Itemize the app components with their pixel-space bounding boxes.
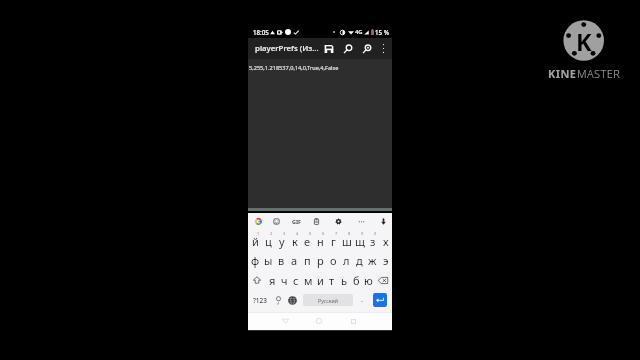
button[interactable]: Recent apps <box>336 312 370 330</box>
staticText: Русский <box>318 297 338 304</box>
staticText: 9 <box>361 231 364 236</box>
button[interactable]: ф <box>248 250 262 270</box>
staticText: ?123 <box>253 296 267 305</box>
staticText: и <box>317 273 324 288</box>
staticText: х <box>383 234 389 249</box>
button[interactable]: Backspace <box>374 270 392 290</box>
staticText: KINE <box>548 66 577 81</box>
staticText: б <box>353 273 360 288</box>
button[interactable]: т <box>326 270 338 290</box>
button[interactable]: ь <box>338 270 350 290</box>
button[interactable]: GIF <box>286 213 306 230</box>
button[interactable]: 3 <box>275 230 288 250</box>
button[interactable]: ч <box>278 270 290 290</box>
staticText: playerPrefs (Из… <box>255 43 319 54</box>
button[interactable]: м <box>302 270 314 290</box>
button[interactable]: Shift <box>248 270 266 290</box>
button[interactable]: Clipboard <box>306 213 327 230</box>
button[interactable]: ю <box>362 270 374 290</box>
staticText: к <box>292 234 298 249</box>
button[interactable]: 5 <box>301 230 314 250</box>
button[interactable]: 1 <box>248 230 262 250</box>
button[interactable]: а <box>288 250 301 270</box>
button[interactable]: Stickers <box>267 213 286 230</box>
button[interactable]: 6 <box>314 230 327 250</box>
button[interactable]: л <box>340 250 353 270</box>
staticText: 1 <box>257 231 260 236</box>
button[interactable]: 9 <box>353 230 366 250</box>
staticText: ш <box>342 234 352 249</box>
button[interactable]: с <box>290 270 302 290</box>
button[interactable]: б <box>350 270 362 290</box>
button[interactable]: Voice input <box>374 213 392 230</box>
staticText: п <box>304 253 311 268</box>
button[interactable]: Change keyboard language <box>284 290 301 310</box>
staticText: 5 <box>309 231 312 236</box>
staticText: ж <box>368 253 377 268</box>
staticText: ь <box>341 273 347 288</box>
staticText: с <box>293 273 299 288</box>
button[interactable]: Period <box>355 290 368 310</box>
button[interactable]: ж <box>366 250 379 270</box>
staticText: 7 <box>335 231 338 236</box>
staticText: а <box>291 253 298 268</box>
button[interactable]: Enter <box>373 293 387 307</box>
button[interactable]: Emoji <box>272 290 284 310</box>
button[interactable]: Save <box>319 38 338 59</box>
button[interactable]: Google search <box>250 213 267 230</box>
staticText: 3 <box>283 231 286 236</box>
button[interactable]: р <box>314 250 327 270</box>
staticText: 6 <box>322 231 325 236</box>
staticText: э <box>383 253 389 268</box>
staticText: т <box>329 273 335 288</box>
button[interactable]: More options <box>376 38 390 59</box>
button[interactable]: 4 <box>288 230 301 250</box>
button[interactable]: 7 <box>327 230 340 250</box>
button[interactable]: Back <box>268 312 302 330</box>
staticText: 2 <box>270 231 273 236</box>
button[interactable]: д <box>353 250 366 270</box>
staticText: в <box>278 253 285 268</box>
staticText: о <box>330 253 337 268</box>
button[interactable]: э <box>379 250 392 270</box>
staticText: я <box>269 273 276 288</box>
staticText: 5,255,1.218537,0,14,0,True,4,False <box>249 64 339 72</box>
staticText: . <box>361 295 363 305</box>
staticText: г <box>331 234 336 249</box>
staticText: 15 % <box>375 28 389 36</box>
button[interactable]: х <box>379 230 392 250</box>
button[interactable]: ы <box>262 250 275 270</box>
staticText: ц <box>265 234 272 249</box>
button[interactable]: Home <box>302 312 336 330</box>
button[interactable]: я <box>266 270 278 290</box>
staticText: 18:05 <box>253 28 269 36</box>
button[interactable]: Find and replace <box>357 38 376 59</box>
button[interactable]: Русский <box>303 294 353 306</box>
button[interactable]: 2 <box>262 230 275 250</box>
button[interactable]: 0 <box>366 230 379 250</box>
staticText: ф <box>251 253 260 268</box>
button[interactable]: п <box>301 250 314 270</box>
staticText: 0 <box>374 231 377 236</box>
staticText: р <box>317 253 324 268</box>
staticText: з <box>370 234 376 249</box>
button[interactable]: в <box>275 250 288 270</box>
button[interactable]: More options <box>349 213 374 230</box>
staticText: е <box>304 234 311 249</box>
button[interactable]: о <box>327 250 340 270</box>
button[interactable]: Keyboard settings <box>327 213 349 230</box>
staticText: 4 <box>296 231 299 236</box>
staticText: 8 <box>348 231 351 236</box>
staticText: у <box>279 234 285 249</box>
staticText: GIF <box>292 218 301 225</box>
staticText: м <box>304 273 313 288</box>
button[interactable]: и <box>314 270 326 290</box>
staticText: K <box>576 26 592 56</box>
staticText: н <box>317 234 324 249</box>
button[interactable]: Search <box>338 38 357 59</box>
button[interactable]: 8 <box>340 230 353 250</box>
staticText: д <box>356 253 363 268</box>
staticText: ы <box>264 253 273 268</box>
staticText: л <box>343 253 350 268</box>
button[interactable]: ?123 <box>248 290 272 310</box>
